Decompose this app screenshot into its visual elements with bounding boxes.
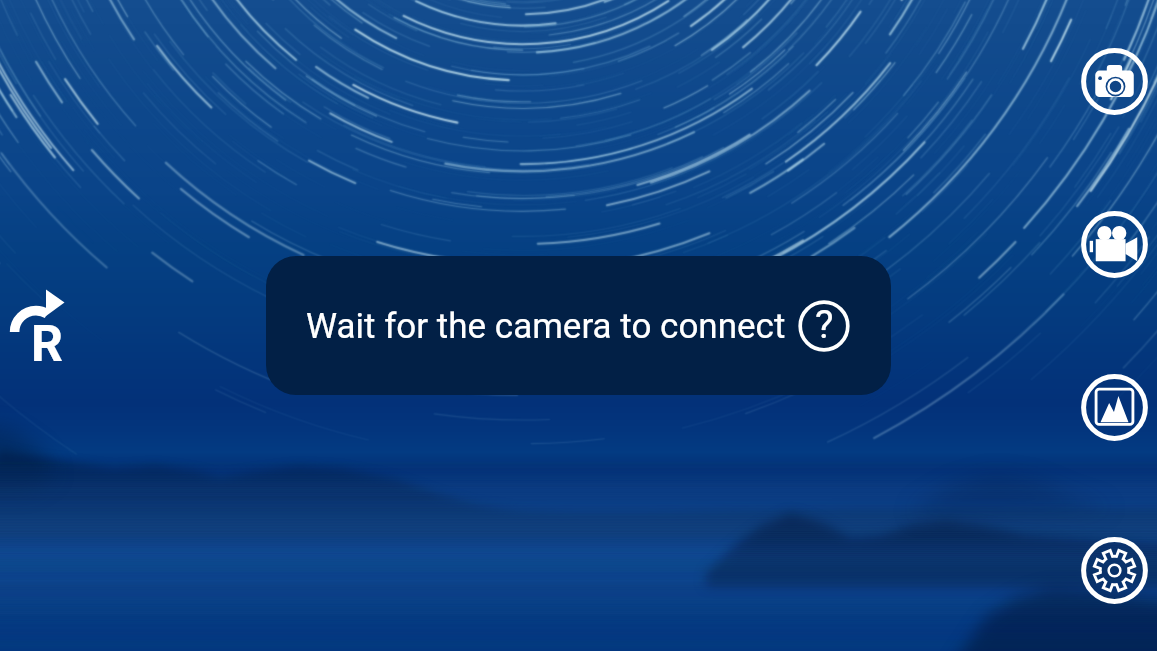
staticText: R	[31, 315, 63, 374]
button[interactable]: Wait for the camera to connect	[266, 256, 891, 395]
button[interactable]: Help	[796, 298, 852, 354]
button[interactable]: Settings	[1071, 527, 1157, 613]
staticText: ?	[815, 302, 834, 348]
button[interactable]: Gallery	[1071, 364, 1157, 450]
button[interactable]: Take photo	[1071, 38, 1157, 124]
button[interactable]: Rotate screen	[10, 286, 66, 362]
staticText: Wait for the camera to connect	[306, 306, 786, 347]
button[interactable]: Record video	[1071, 201, 1157, 287]
